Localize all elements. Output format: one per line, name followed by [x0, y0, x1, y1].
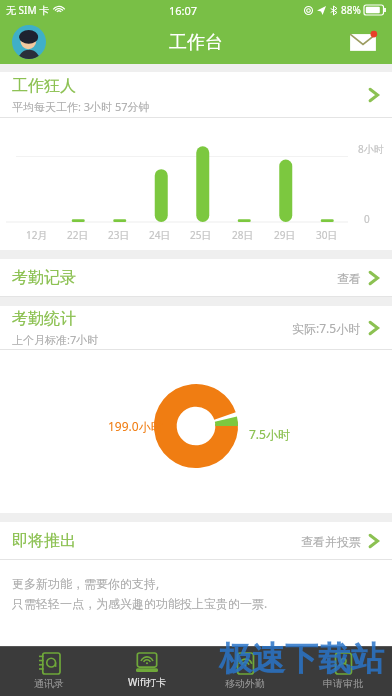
staticText: 只需轻轻一点，为感兴趣的功能投上宝贵的一票.: [12, 595, 268, 611]
button[interactable]: 申请审批: [294, 646, 392, 696]
button[interactable]: Wifi打卡: [98, 646, 196, 696]
staticText: 上个月标准:7小时: [12, 332, 99, 347]
staticText: 移动外勤: [225, 677, 265, 690]
staticText: 88%: [341, 3, 361, 17]
staticText: 平均每天工作: 3小时 57分钟: [12, 99, 150, 114]
staticText: 24日: [149, 228, 171, 242]
button[interactable]: 考勤记录: [0, 259, 392, 297]
staticText: 查看: [337, 271, 361, 286]
staticText: 通讯录: [34, 677, 64, 690]
staticText: 申请审批: [323, 677, 363, 690]
staticText: 25日: [190, 228, 212, 242]
button[interactable]: 通讯录: [0, 646, 98, 696]
button[interactable]: 考勤统计: [0, 306, 392, 350]
staticText: 工作狂人: [12, 76, 76, 96]
staticText: 实际:7.5小时: [292, 320, 361, 336]
staticText: 8小时: [358, 142, 384, 156]
staticText: 无 SIM 卡: [6, 3, 50, 17]
staticText: 0: [364, 212, 370, 226]
staticText: 更多新功能，需要你的支持,: [12, 575, 160, 591]
staticText: 22日: [67, 228, 89, 242]
staticText: 7.5小时: [249, 426, 290, 442]
staticText: 12月: [26, 228, 48, 242]
staticText: 30日: [316, 228, 338, 242]
staticText: 查看并投票: [301, 534, 361, 549]
staticText: Wifi打卡: [128, 675, 166, 689]
button[interactable]: Messages: [348, 30, 378, 54]
button[interactable]: Profile: [12, 25, 46, 59]
staticText: 工作台: [169, 31, 223, 54]
staticText: 16:07: [169, 3, 198, 18]
staticText: 即将推出: [12, 531, 76, 551]
staticText: 考勤记录: [12, 268, 76, 288]
button[interactable]: 工作狂人: [0, 72, 392, 118]
staticText: 考勤统计: [12, 309, 76, 329]
button[interactable]: 移动外勤: [196, 646, 294, 696]
staticText: 23日: [108, 228, 130, 242]
staticText: 199.0小时: [108, 418, 163, 434]
staticText: 28日: [232, 228, 254, 242]
button[interactable]: 即将推出: [0, 522, 392, 560]
staticText: 极速下载站: [219, 638, 384, 680]
staticText: 29日: [274, 228, 296, 242]
